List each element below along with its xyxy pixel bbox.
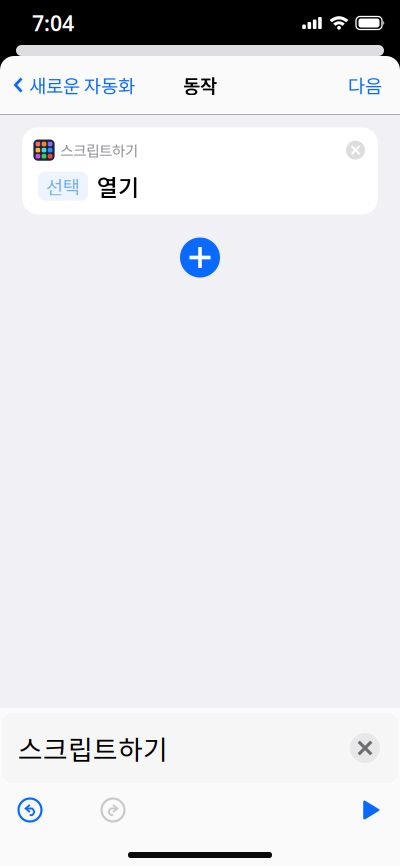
staticText: 스크립트하기 xyxy=(18,729,168,767)
button[interactable]: 다음 xyxy=(348,63,400,106)
button[interactable]: 지우기 xyxy=(350,733,398,763)
staticText: 새로운 자동화 xyxy=(29,71,135,98)
button[interactable]: 다시 실행 xyxy=(42,798,125,822)
staticText: 다음 xyxy=(348,71,382,98)
button[interactable]: 삭제 xyxy=(346,141,365,160)
staticText: 7:04 xyxy=(32,9,74,37)
staticText: 열기 xyxy=(97,170,139,202)
button[interactable]: 새로운 자동화 xyxy=(0,63,135,106)
button[interactable]: 실행 xyxy=(362,800,400,820)
button[interactable]: 실행 취소 xyxy=(0,798,42,822)
staticText: 동작 xyxy=(183,71,217,98)
button[interactable]: 동작 추가 xyxy=(180,237,220,277)
staticText: 스크립트하기 xyxy=(60,139,138,161)
staticText: 선택 xyxy=(46,173,80,200)
